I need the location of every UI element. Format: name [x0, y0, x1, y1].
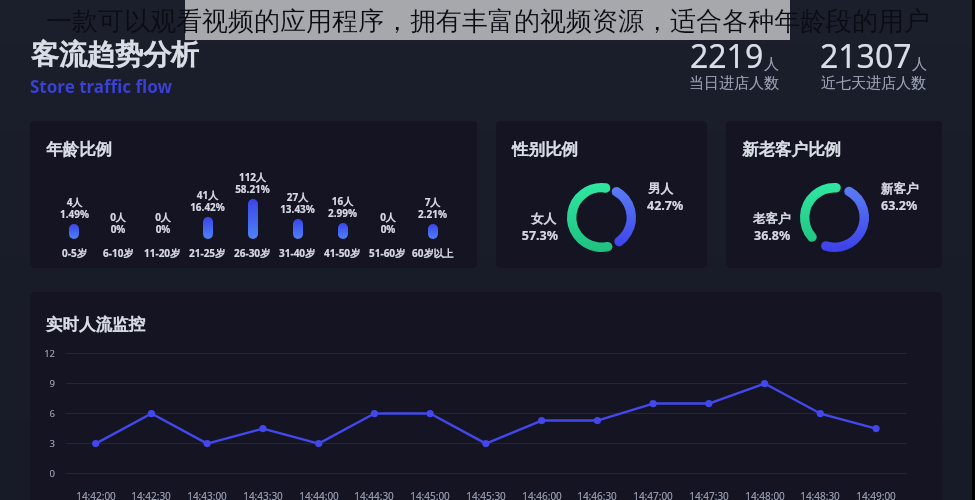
staticText: 11-20岁 [144, 246, 181, 260]
staticText: 63.2% [881, 197, 942, 214]
staticText: 21307 [820, 34, 912, 78]
staticText: 42.7% [647, 197, 707, 214]
staticText: 女人 [496, 211, 556, 227]
staticText: 14:48:00 [735, 489, 795, 500]
staticText: 12 [30, 347, 55, 360]
staticText: 14:46:30 [567, 489, 627, 500]
staticText: 客流趋势分析 [31, 37, 199, 72]
staticText: 2219 [690, 34, 764, 78]
staticText: 7人 2.21% [418, 195, 447, 221]
staticText: 14:43:00 [177, 489, 237, 500]
staticText: 14:46:00 [512, 489, 572, 500]
staticText: 性别比例 [512, 139, 578, 160]
staticText: 14:44:00 [289, 489, 349, 500]
staticText: 14:42:30 [121, 489, 181, 500]
staticText: 51-60岁 [369, 246, 406, 260]
staticText: 41人 16.42% [190, 188, 225, 214]
staticText: 14:49:00 [846, 489, 906, 500]
staticText: 14:47:00 [623, 489, 683, 500]
staticText: 27人 13.43% [280, 190, 315, 216]
staticText: 年龄比例 [46, 139, 112, 160]
staticText: 26-30岁 [234, 246, 271, 260]
staticText: 老客户 [753, 211, 833, 227]
staticText: 6-10岁 [103, 246, 134, 260]
staticText: 14:45:00 [400, 489, 460, 500]
staticText: 14:47:30 [679, 489, 739, 500]
staticText: 男人 [648, 181, 707, 197]
staticText: 21-25岁 [189, 246, 226, 260]
staticText: 6 [30, 407, 55, 420]
staticText: 近七天进店人数 [821, 74, 926, 93]
button[interactable]: 年龄比例 [30, 121, 477, 268]
button[interactable]: 2219 [644, 34, 824, 96]
staticText: 0人 0% [380, 210, 396, 236]
staticText: 112人 58.21% [235, 170, 270, 196]
staticText: 实时人流监控 [46, 314, 145, 335]
staticText: Store traffic flow [30, 75, 173, 98]
staticText: 新老客户比例 [742, 139, 841, 160]
staticText: 16人 2.99% [328, 194, 357, 220]
staticText: 9 [30, 377, 55, 390]
staticText: 人 [764, 55, 779, 74]
staticText: 3 [30, 437, 55, 450]
staticText: 14:42:00 [66, 489, 126, 500]
staticText: 人 [912, 55, 927, 74]
staticText: 一款可以观看视频的应用程序，拥有丰富的视频资源，适合各种年龄段的用户 [46, 5, 930, 38]
button[interactable]: 新老客户比例 [726, 121, 942, 268]
staticText: 14:48:30 [790, 489, 850, 500]
staticText: 0人 0% [155, 210, 171, 236]
staticText: 0-5岁 [62, 246, 87, 260]
button[interactable]: 21307 [783, 34, 963, 96]
staticText: 0 [30, 467, 55, 480]
staticText: 4人 1.49% [60, 195, 89, 221]
staticText: 41-50岁 [324, 246, 361, 260]
button[interactable]: 性别比例 [496, 121, 707, 268]
staticText: 57.3% [496, 227, 558, 244]
button[interactable]: 实时人流监控 [30, 292, 942, 500]
staticText: 60岁以上 [412, 246, 454, 260]
staticText: 14:44:30 [344, 489, 404, 500]
staticText: 14:43:30 [233, 489, 293, 500]
staticText: 31-40岁 [279, 246, 316, 260]
staticText: 36.8% [754, 227, 834, 244]
staticText: 14:45:30 [456, 489, 516, 500]
staticText: 新客户 [881, 181, 942, 197]
staticText: 0人 0% [110, 210, 126, 236]
staticText: 当日进店人数 [689, 74, 779, 93]
